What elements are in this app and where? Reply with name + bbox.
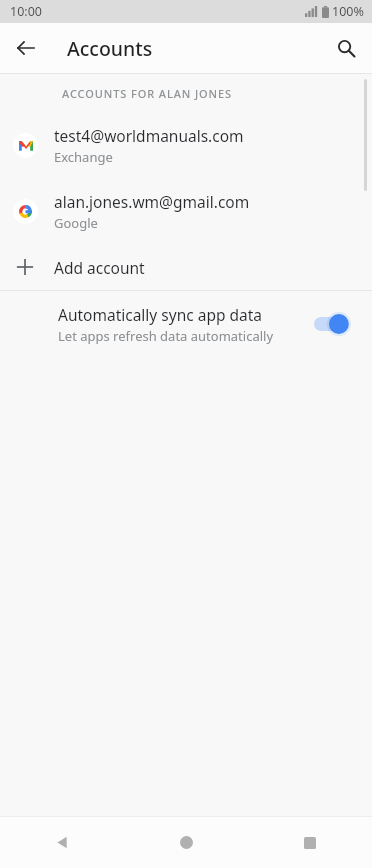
button[interactable]: Search: [326, 28, 366, 68]
button[interactable]: test4@worldmanuals.com: [0, 112, 372, 178]
staticText: Automatically sync app data: [58, 304, 262, 325]
button[interactable]: Back: [0, 817, 124, 868]
button[interactable]: Recent apps: [248, 817, 372, 868]
staticText: alan.jones.wm@gmail.com: [54, 191, 250, 212]
staticText: Google: [54, 214, 98, 232]
staticText: 10:00: [10, 3, 42, 20]
staticText: Accounts: [67, 35, 153, 62]
button[interactable]: Add account: [0, 244, 372, 290]
button[interactable]: Home: [124, 817, 248, 868]
button[interactable]: Automatically sync app data: [0, 291, 372, 357]
staticText: test4@worldmanuals.com: [54, 125, 244, 146]
staticText: 100%: [332, 3, 364, 20]
staticText: ACCOUNTS FOR ALAN JONES: [62, 86, 233, 101]
button[interactable]: alan.jones.wm@gmail.com: [0, 178, 372, 244]
staticText: Add account: [54, 257, 145, 278]
staticText: Let apps refresh data automatically: [58, 327, 274, 345]
staticText: Exchange: [54, 148, 113, 166]
button[interactable]: Back: [6, 28, 46, 68]
button[interactable]: Automatically sync app data toggle: [314, 310, 358, 338]
